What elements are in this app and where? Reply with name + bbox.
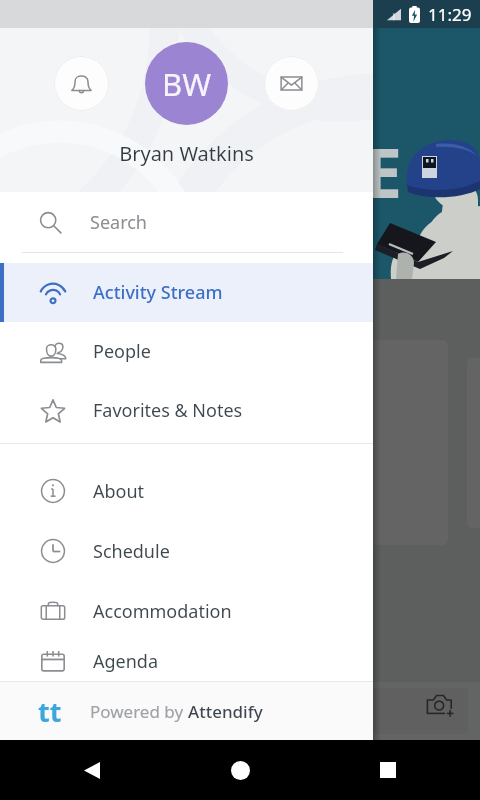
staticText: Favorites & Notes [93, 398, 243, 423]
button[interactable]: Activity Stream [0, 263, 373, 322]
staticText: Schedule [93, 539, 170, 564]
staticText: Attendify [188, 700, 263, 723]
button[interactable]: Messages [264, 56, 319, 111]
button[interactable]: People [0, 322, 373, 381]
button[interactable]: Search [0, 192, 373, 252]
button[interactable]: Accommodation [0, 581, 373, 641]
button[interactable]: Favorites & Notes [0, 381, 373, 440]
button[interactable]: Notifications [54, 56, 109, 111]
staticText: About [93, 479, 145, 504]
button[interactable]: BW [145, 42, 228, 125]
button[interactable]: About [0, 461, 373, 521]
button[interactable]: tt [0, 682, 373, 740]
staticText: 11:29 [428, 3, 472, 26]
button[interactable]: Schedule [0, 521, 373, 581]
staticText: Search [90, 210, 147, 235]
staticText: Bryan Watkins [119, 140, 254, 167]
staticText: Powered by [90, 700, 188, 723]
staticText: Agenda [93, 649, 159, 674]
button[interactable]: Back [70, 748, 114, 792]
staticText: BW [162, 63, 211, 105]
button[interactable]: Recent apps [366, 748, 410, 792]
staticText: Activity Stream [93, 280, 223, 305]
button[interactable]: Home [218, 748, 262, 792]
button[interactable]: Add photo [426, 691, 454, 719]
staticText: People [93, 339, 151, 364]
staticText: Accommodation [93, 599, 232, 624]
staticText: E [364, 125, 403, 218]
staticText: tt [38, 693, 62, 730]
button[interactable]: Agenda [0, 641, 373, 681]
